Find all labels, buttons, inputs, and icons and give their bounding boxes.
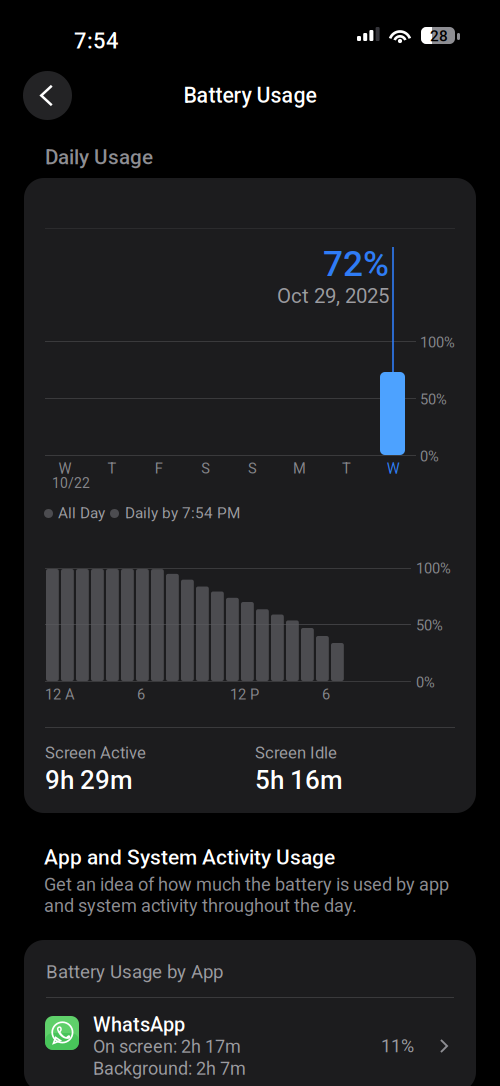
- staticText: 72%: [323, 243, 389, 285]
- staticText: W: [58, 460, 71, 477]
- staticText: Background: 2h 7m: [93, 1058, 246, 1079]
- staticText: 10/22: [52, 475, 90, 491]
- staticText: T: [342, 460, 351, 477]
- staticText: 0%: [416, 674, 435, 691]
- staticText: Battery Usage: [183, 83, 316, 108]
- staticText: On screen: 2h 17m: [93, 1036, 241, 1057]
- staticText: All Day: [58, 504, 105, 522]
- staticText: Battery Usage by App: [46, 961, 223, 983]
- staticText: S: [248, 460, 257, 477]
- staticText: 5h 16m: [255, 765, 343, 795]
- staticText: 28: [430, 27, 448, 45]
- staticText: W: [387, 460, 400, 477]
- staticText: Screen Active: [45, 743, 146, 762]
- staticText: 12 P: [230, 686, 259, 703]
- staticText: Get an idea of how much the battery is u…: [44, 874, 449, 916]
- staticText: Daily Usage: [45, 145, 153, 169]
- staticText: M: [293, 460, 306, 477]
- staticText: Screen Idle: [255, 743, 337, 762]
- staticText: 100%: [420, 334, 455, 351]
- staticText: 100%: [416, 560, 451, 577]
- staticText: 11%: [381, 1035, 414, 1057]
- staticText: App and System Activity Usage: [44, 845, 335, 869]
- staticText: S: [201, 460, 210, 477]
- button[interactable]: Back: [23, 71, 72, 120]
- staticText: 9h 29m: [45, 765, 133, 795]
- button[interactable]: WhatsApp: [24, 998, 476, 1086]
- staticText: 50%: [420, 391, 447, 408]
- staticText: Daily by 7:54 PM: [125, 504, 240, 522]
- staticText: F: [155, 460, 163, 477]
- staticText: 12 A: [45, 686, 75, 703]
- staticText: WhatsApp: [93, 1013, 185, 1036]
- staticText: 6: [137, 686, 145, 703]
- staticText: 50%: [416, 617, 443, 634]
- staticText: 7:54: [74, 28, 119, 54]
- staticText: T: [107, 460, 116, 477]
- staticText: 0%: [420, 448, 439, 465]
- staticText: 6: [322, 686, 330, 703]
- staticText: Oct 29, 2025: [277, 284, 389, 308]
